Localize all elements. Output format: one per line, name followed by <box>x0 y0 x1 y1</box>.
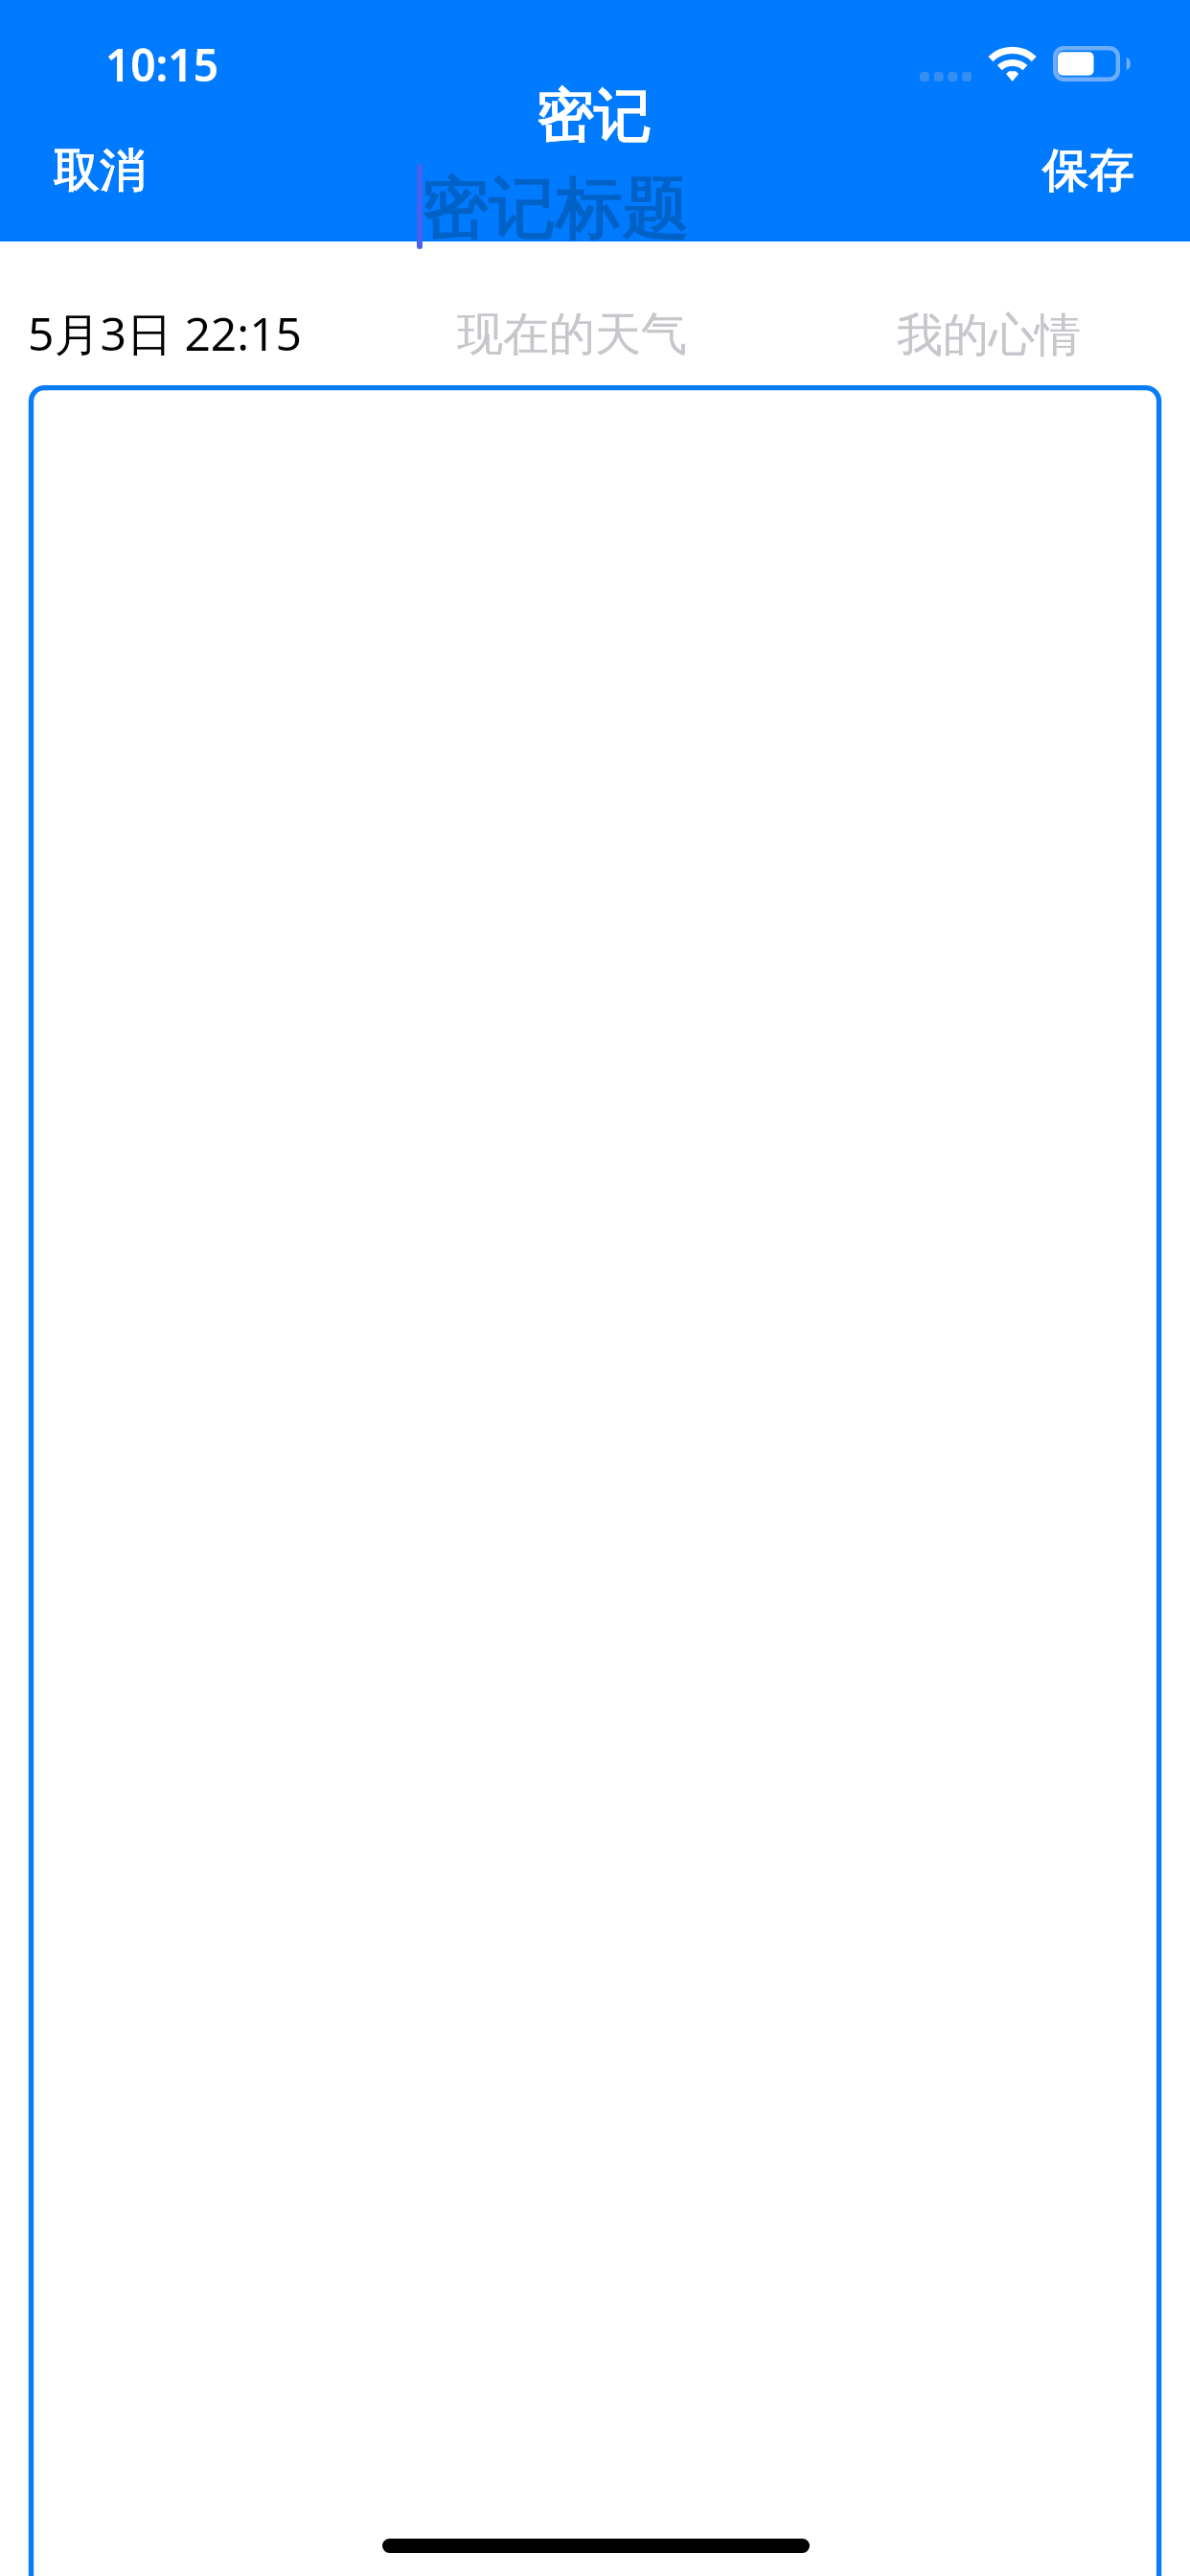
staticText: 10:15 <box>105 34 218 95</box>
staticText: 取消 <box>54 142 146 199</box>
staticText: 密记 <box>537 80 652 152</box>
staticText: 密记标题 <box>422 167 690 251</box>
staticText: 密记标题 <box>422 167 690 251</box>
button[interactable]: 取消 <box>31 132 169 209</box>
staticText: 密记 <box>537 80 652 152</box>
button[interactable]: 保存 <box>1019 132 1157 209</box>
button[interactable]: 我的心情 <box>874 293 1104 378</box>
button[interactable]: 密记标题 <box>422 167 690 251</box>
button[interactable]: Note body editor <box>29 385 1161 2576</box>
staticText: 现在的天气 <box>457 306 687 363</box>
other: Battery <box>1053 46 1130 82</box>
staticText: 保存 <box>1042 142 1134 199</box>
other: Wi-Fi <box>988 46 1037 84</box>
button[interactable]: 现在的天气 <box>434 292 710 377</box>
staticText: 保存 <box>1042 142 1134 199</box>
staticText: 5月3日 22:15 <box>28 302 303 365</box>
staticText: 我的心情 <box>897 307 1081 364</box>
other: Cellular signal <box>920 72 973 81</box>
staticText: 取消 <box>54 142 146 199</box>
